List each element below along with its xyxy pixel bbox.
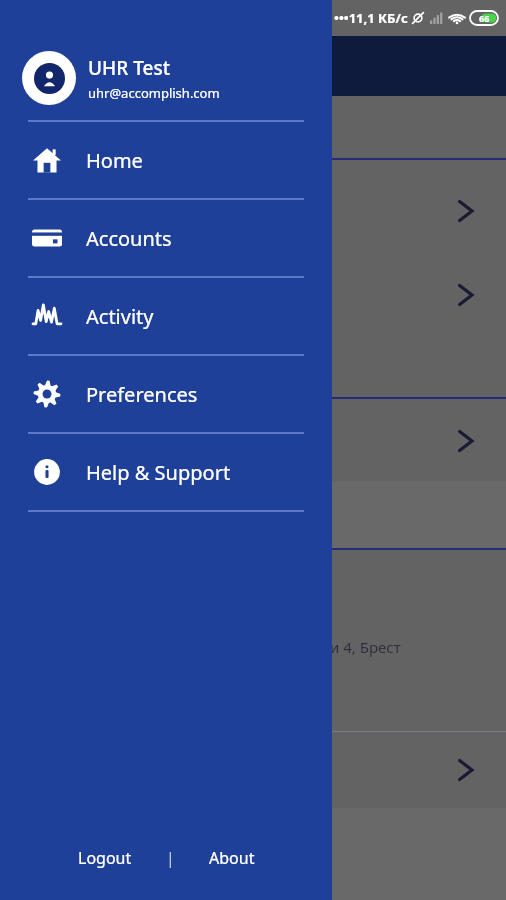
staticText: Help & Support	[86, 459, 231, 486]
staticText: UHR Test	[88, 55, 170, 81]
button[interactable]: Home	[0, 122, 332, 198]
staticText: 66	[479, 12, 490, 24]
staticText: Accounts	[86, 225, 172, 252]
button[interactable]: Preferences	[0, 356, 332, 432]
other: Home	[33, 146, 61, 174]
other: Help and Support	[33, 458, 61, 486]
button[interactable]: Logout	[62, 839, 148, 877]
button[interactable]: UHR Test	[0, 36, 332, 120]
staticText: Activity	[86, 303, 154, 330]
staticText: |	[166, 847, 175, 869]
staticText: About	[209, 847, 255, 869]
other: Preferences	[33, 380, 61, 408]
other: Accounts	[32, 223, 62, 253]
staticText: Logout	[78, 847, 132, 869]
staticText: Home	[86, 147, 143, 174]
other: Activity	[33, 302, 61, 330]
staticText: Preferences	[86, 381, 198, 408]
staticText: uhr@accomplish.com	[88, 84, 220, 102]
staticText: и 4, Брест	[330, 637, 401, 657]
staticText: •••11,1 КБ/с	[334, 9, 408, 27]
button[interactable]: Activity	[0, 278, 332, 354]
button[interactable]: Help and Support	[0, 434, 332, 510]
button[interactable]: About	[193, 839, 271, 877]
button[interactable]: Accounts	[0, 200, 332, 276]
